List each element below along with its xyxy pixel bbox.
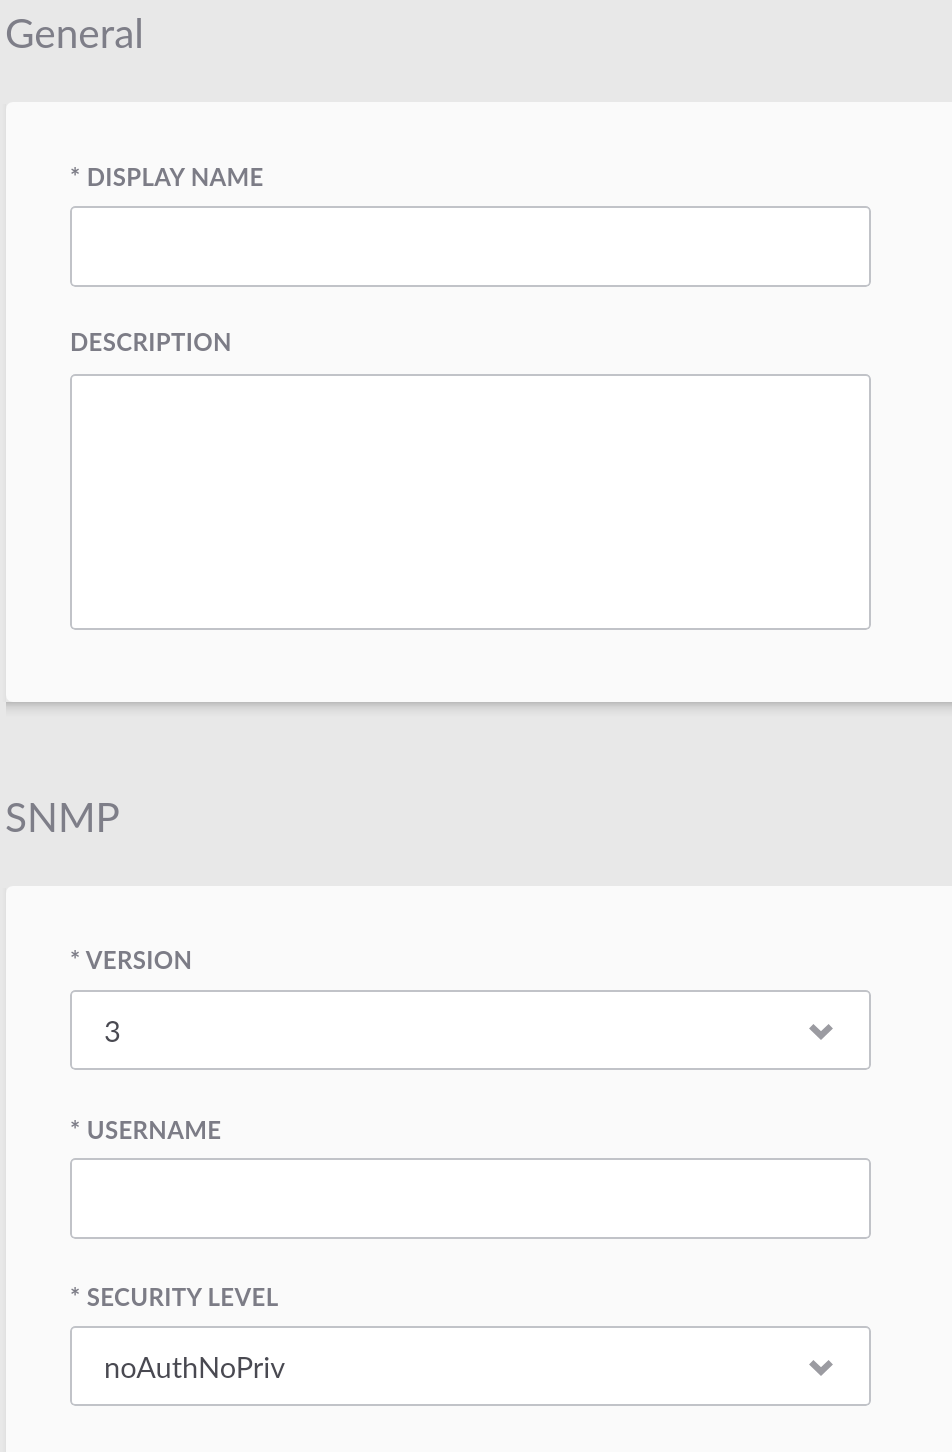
staticText: * SECURITY LEVEL xyxy=(70,1282,279,1311)
staticText: 3 xyxy=(104,1013,121,1048)
staticText: * DISPLAY NAME xyxy=(70,162,264,191)
button[interactable]: Security level xyxy=(70,1326,871,1406)
button[interactable]: Display name xyxy=(70,206,871,287)
staticText: SNMP xyxy=(5,792,120,841)
staticText: * USERNAME xyxy=(70,1115,222,1144)
staticText: * VERSION xyxy=(70,945,193,974)
staticText: noAuthNoPriv xyxy=(104,1349,286,1384)
button[interactable]: Username xyxy=(70,1158,871,1239)
button[interactable]: Version xyxy=(70,990,871,1070)
staticText: General xyxy=(5,8,144,57)
staticText: DESCRIPTION xyxy=(70,327,232,356)
button[interactable]: Description xyxy=(70,374,871,630)
